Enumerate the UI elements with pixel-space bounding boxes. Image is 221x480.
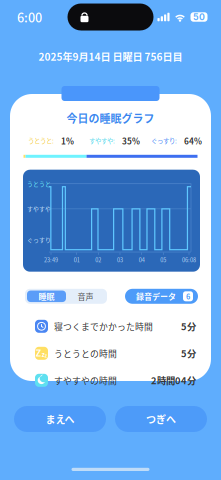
staticText: Z xyxy=(35,348,41,359)
staticText: 6:00 xyxy=(17,8,42,26)
staticText: うとうと xyxy=(27,179,51,188)
button[interactable]: 寝つくまでかかった時間 xyxy=(19,313,211,340)
staticText: うとうとの時間 xyxy=(54,347,117,360)
button[interactable]: すやすやの時間 xyxy=(19,367,211,394)
staticText: 06:08 xyxy=(182,256,196,264)
button[interactable]: 録音データ xyxy=(125,289,198,304)
staticText: すやすやの時間 xyxy=(54,374,117,387)
staticText: 01 xyxy=(74,256,80,264)
staticText: すやすや: xyxy=(89,136,115,145)
staticText: 寝つくまでかかった時間 xyxy=(54,320,153,333)
staticText: 今日の睡眠グラフ xyxy=(66,110,154,126)
staticText: 02 xyxy=(95,256,101,264)
staticText: 2025年9月14日 日曜日 756日目 xyxy=(38,49,182,64)
staticText: ぐっすり xyxy=(27,235,51,244)
button[interactable]: 音声 xyxy=(66,291,105,302)
staticText: ぐっすり: xyxy=(151,136,177,145)
staticText: 睡眠 xyxy=(38,290,54,302)
staticText: 2時間04分 xyxy=(151,373,196,387)
staticText: 04 xyxy=(139,256,145,264)
staticText: 5分 xyxy=(181,319,196,333)
staticText: 35% xyxy=(122,135,140,147)
staticText: つぎへ xyxy=(146,412,176,426)
staticText: うとうと: xyxy=(28,136,54,145)
staticText: z xyxy=(44,353,47,358)
staticText: 64% xyxy=(184,135,202,147)
button[interactable]: 睡眠 xyxy=(27,291,66,302)
button[interactable]: Z xyxy=(19,340,211,367)
staticText: 録音データ xyxy=(136,290,176,302)
staticText: 6 xyxy=(186,291,190,302)
staticText: まえへ xyxy=(45,412,74,426)
staticText: z xyxy=(41,351,44,359)
staticText: すやすや xyxy=(27,204,51,213)
staticText: 03 xyxy=(117,256,123,264)
button[interactable]: まえへ xyxy=(14,406,106,432)
staticText: 50 xyxy=(193,12,205,22)
button[interactable]: つぎへ xyxy=(115,406,207,432)
staticText: 5分 xyxy=(181,346,196,360)
staticText: 05 xyxy=(160,256,166,264)
staticText: 音声 xyxy=(77,290,93,302)
staticText: 1% xyxy=(61,135,74,147)
staticText: 23:49 xyxy=(44,256,58,264)
